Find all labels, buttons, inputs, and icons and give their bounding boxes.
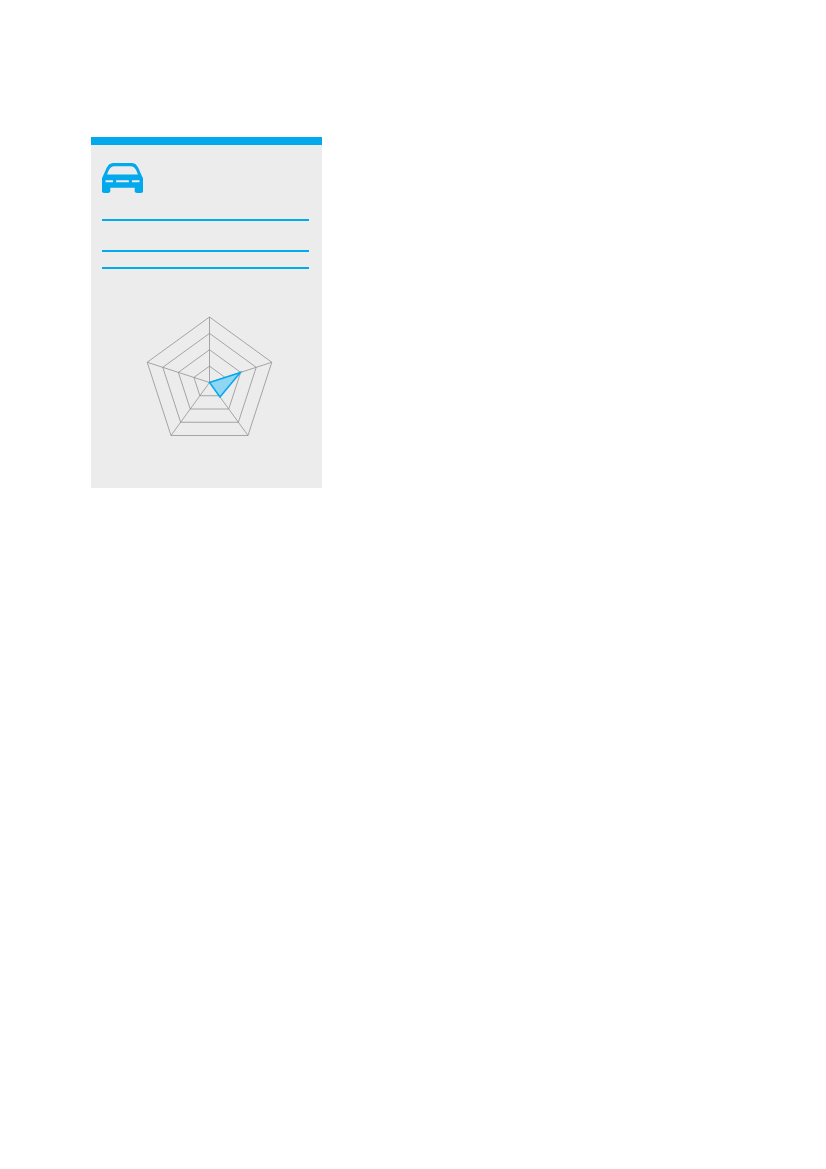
other: Vehicle score chart (144, 317, 275, 448)
other: Vehicle (102, 163, 143, 193)
button[interactable]: Vehicle (91, 137, 322, 488)
